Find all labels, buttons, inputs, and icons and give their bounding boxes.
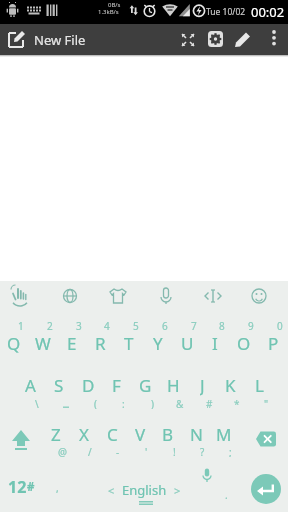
staticText: I	[212, 332, 218, 354]
staticText: Q	[7, 332, 21, 354]
staticText: '	[145, 445, 148, 457]
staticText: P	[268, 332, 279, 354]
staticText: U	[181, 332, 194, 354]
staticText: &	[176, 397, 184, 409]
staticText: Z	[51, 423, 61, 445]
button[interactable]	[96, 281, 144, 310]
button[interactable]: N	[182, 423, 210, 445]
staticText: X	[79, 423, 89, 445]
staticText: >	[174, 483, 181, 498]
button[interactable]	[207, 30, 225, 48]
staticText: N	[190, 423, 203, 445]
button[interactable]: <	[98, 479, 190, 501]
staticText: (	[94, 397, 97, 409]
button[interactable]: O	[230, 332, 258, 354]
button[interactable]	[233, 30, 253, 50]
button[interactable]: A	[16, 374, 44, 396]
button[interactable]	[4, 26, 31, 53]
staticText: #	[27, 479, 35, 495]
staticText: K	[225, 374, 236, 396]
staticText: ;	[229, 445, 232, 457]
button[interactable]: U	[173, 332, 201, 354]
staticText: O	[237, 332, 251, 354]
button[interactable]: X	[70, 423, 98, 445]
staticText: Tue 10/02	[206, 6, 246, 18]
button[interactable]: Y	[144, 332, 172, 354]
button[interactable]: Z	[42, 423, 70, 445]
button[interactable]: R	[86, 332, 114, 354]
staticText: 0B/s	[108, 1, 121, 9]
staticText: Y	[153, 332, 163, 354]
button[interactable]: J	[188, 374, 216, 396]
button[interactable]	[144, 281, 192, 310]
staticText: 5	[133, 319, 139, 331]
button[interactable]: E	[58, 332, 86, 354]
button[interactable]: T	[115, 332, 143, 354]
staticText: 9	[248, 319, 254, 331]
staticText: 8	[219, 319, 225, 331]
staticText: J	[200, 374, 205, 396]
staticText: 4	[104, 319, 110, 331]
staticText: 6	[162, 319, 168, 331]
staticText: 00:02	[251, 3, 285, 21]
staticText: C	[107, 423, 118, 445]
staticText: <	[108, 483, 115, 498]
staticText: S	[54, 374, 64, 396]
staticText: L	[255, 374, 264, 396]
button[interactable]: D	[74, 374, 102, 396]
button[interactable]: H	[159, 374, 187, 396]
staticText: H	[167, 374, 180, 396]
staticText: ?	[200, 445, 205, 457]
staticText: 12	[8, 476, 27, 498]
staticText: )	[151, 397, 154, 409]
button[interactable]: I	[201, 332, 229, 354]
button[interactable]: Q	[0, 332, 28, 354]
staticText: W	[35, 332, 51, 354]
staticText: 0	[277, 319, 283, 331]
staticText: #	[206, 397, 213, 409]
button[interactable]	[192, 281, 240, 310]
button[interactable]: K	[216, 374, 244, 396]
staticText: !	[173, 445, 176, 457]
staticText: \	[35, 397, 39, 409]
button[interactable]	[256, 431, 280, 451]
staticText: M	[216, 423, 232, 445]
button[interactable]: M	[210, 423, 238, 445]
button[interactable]: W	[29, 332, 57, 354]
button[interactable]: G	[131, 374, 159, 396]
staticText: 2	[47, 319, 53, 331]
staticText: R	[95, 332, 106, 354]
staticText: F	[112, 374, 121, 396]
button[interactable]: S	[45, 374, 73, 396]
button[interactable]	[0, 281, 48, 310]
staticText: .	[225, 488, 228, 500]
staticText: E	[67, 332, 77, 354]
staticText: :	[122, 397, 125, 409]
button[interactable]	[240, 281, 288, 310]
button[interactable]	[4, 430, 38, 460]
staticText: /	[88, 445, 92, 457]
button[interactable]: V	[126, 423, 154, 445]
button[interactable]: 12	[3, 475, 39, 499]
staticText: 1.3kB/s	[98, 8, 119, 16]
button[interactable]: L	[245, 374, 273, 396]
staticText: B	[162, 423, 174, 445]
staticText: A	[25, 374, 36, 396]
button[interactable]	[266, 28, 282, 52]
button[interactable]: P	[259, 332, 287, 354]
staticText: ,	[56, 481, 59, 493]
button[interactable]: B	[154, 423, 182, 445]
button[interactable]	[251, 474, 281, 504]
staticText: English	[122, 481, 167, 499]
button[interactable]: F	[102, 374, 130, 396]
staticText: -	[116, 445, 120, 457]
button[interactable]: C	[98, 423, 126, 445]
staticText: 3	[76, 319, 82, 331]
button[interactable]	[178, 30, 198, 50]
staticText: T	[124, 332, 134, 354]
staticText: 7	[191, 319, 197, 331]
staticText: D	[82, 374, 95, 396]
staticText: "	[264, 397, 269, 409]
staticText: @	[58, 445, 67, 457]
button[interactable]	[48, 281, 96, 310]
